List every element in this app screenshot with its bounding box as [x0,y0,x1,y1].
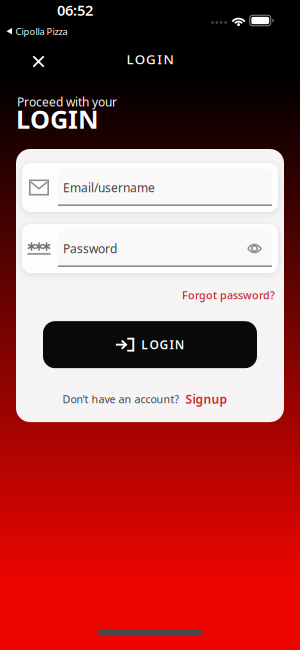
button[interactable]: Close [32,55,44,67]
button[interactable]: Password [22,224,278,273]
staticText: G [159,337,168,353]
staticText: Signup [185,391,227,407]
staticText: I [170,337,174,353]
button[interactable]: Forgot password? [182,288,275,302]
staticText: O [149,337,158,353]
button[interactable]: Signup [185,391,227,407]
staticText: Cipolla Pizza [15,25,67,38]
staticText: Password [63,240,117,256]
button[interactable]: L [43,321,257,368]
staticText: Proceed with your [17,94,117,110]
staticText: L [141,337,148,353]
staticText: Don't have an account? [62,392,179,406]
staticText: Email/username [63,179,155,195]
staticText: LOGIN [16,102,99,136]
staticText: LOGIN [126,50,174,68]
button[interactable]: Back to Cipolla Pizza [6,25,67,38]
staticText: N [175,337,185,353]
staticText: Forgot password? [182,288,275,302]
staticText: 06:52 [57,0,93,20]
button[interactable]: Email/username [22,163,278,212]
button[interactable]: Show password [247,243,272,254]
